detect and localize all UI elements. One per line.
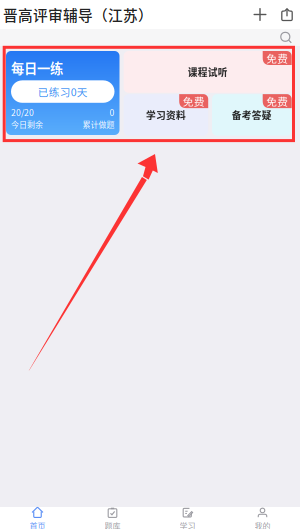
staticText: 0 [109,106,114,118]
staticText: 学习资料 [146,108,186,122]
staticText: 我的 [254,520,270,529]
staticText: 20/20 [11,106,34,118]
staticText: 免费 [266,50,288,66]
button[interactable]: Share [268,6,295,22]
staticText: 课程试听 [188,65,228,79]
staticText: 学习 [179,520,195,529]
staticText: 晋高评审辅导（江苏） [3,4,153,25]
button[interactable]: 题库 [75,504,150,529]
button[interactable]: 课程试听 [124,51,292,93]
button[interactable]: 我的 [225,504,300,529]
button[interactable]: 学习 [150,504,225,529]
staticText: 备考答疑 [232,108,272,122]
button[interactable]: Search [279,30,293,44]
button[interactable]: 备考答疑 [212,94,292,136]
staticText: 免费 [266,93,288,109]
button[interactable]: Add [252,6,268,22]
staticText: 题库 [104,520,120,529]
button[interactable]: 学习资料 [124,94,208,136]
staticText: 今日剩余 [11,118,43,130]
staticText: 已练习0天 [38,84,88,99]
staticText: 首页 [29,520,45,529]
staticText: 免费 [183,93,205,109]
staticText: 累计做题 [82,118,114,130]
button[interactable]: 每日一练 [6,51,119,135]
button[interactable]: 首页 [0,504,75,529]
staticText: 每日一练 [11,58,63,77]
